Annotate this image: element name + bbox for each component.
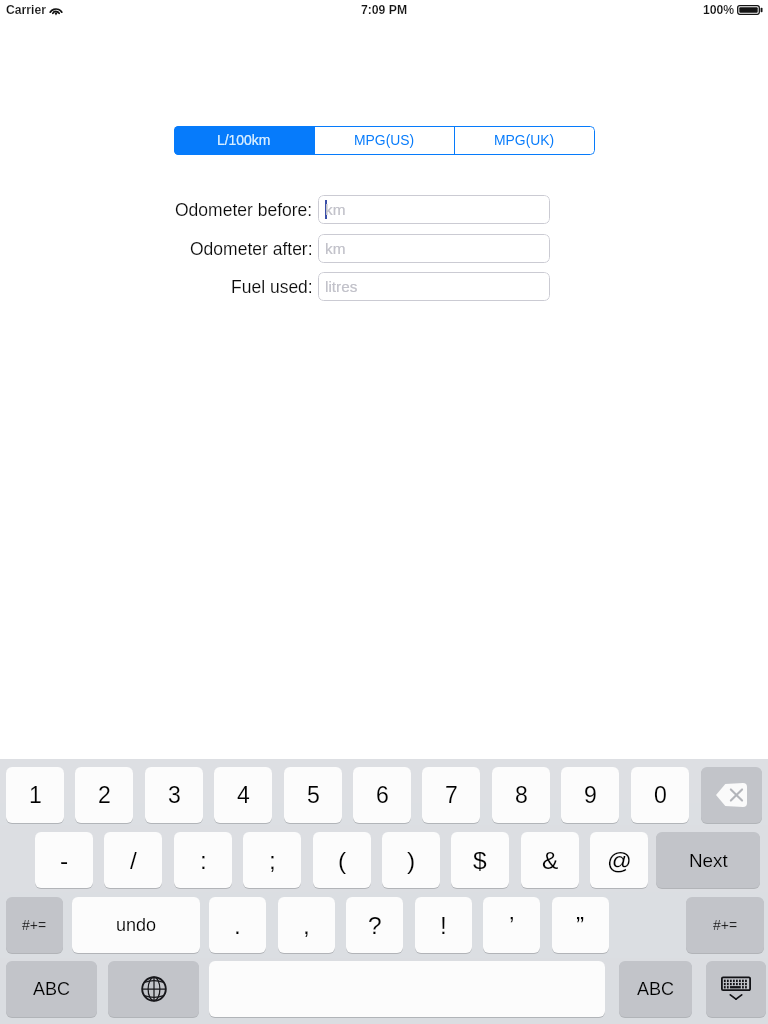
staticText: undo: [116, 915, 157, 935]
button[interactable]: $: [451, 832, 509, 888]
button[interactable]: #+=: [6, 897, 63, 953]
staticText: L/100km: [217, 132, 271, 148]
button[interactable]: !: [415, 897, 472, 953]
button[interactable]: ABC: [619, 961, 692, 1017]
staticText: 100%: [703, 3, 735, 17]
staticText: ’: [509, 912, 515, 939]
staticText: Next: [689, 850, 728, 871]
staticText: 3: [168, 782, 181, 808]
staticText: ?: [368, 912, 382, 939]
button[interactable]: 7: [422, 767, 480, 823]
button[interactable]: MPG(US): [315, 126, 454, 155]
button[interactable]: ’: [483, 897, 540, 953]
staticText: 6: [376, 782, 389, 808]
staticText: -: [60, 847, 69, 874]
button[interactable]: /: [104, 832, 162, 888]
staticText: 9: [584, 782, 597, 808]
staticText: ”: [576, 912, 585, 939]
staticText: Carrier: [6, 3, 46, 17]
staticText: 1: [29, 782, 42, 808]
staticText: Fuel used:: [231, 277, 313, 297]
staticText: MPG(UK): [494, 132, 555, 148]
button[interactable]: 1: [6, 767, 64, 823]
staticText: 0: [654, 782, 667, 808]
button[interactable]: Next keyboard: [108, 961, 199, 1017]
staticText: .: [234, 912, 241, 939]
staticText: 4: [237, 782, 250, 808]
staticText: #+=: [22, 917, 47, 933]
button[interactable]: :: [174, 832, 232, 888]
button[interactable]: ;: [243, 832, 301, 888]
staticText: @: [607, 847, 632, 874]
button[interactable]: MPG(UK): [455, 126, 594, 155]
staticText: 8: [515, 782, 528, 808]
staticText: ;: [269, 847, 276, 874]
button[interactable]: ,: [278, 897, 335, 953]
button[interactable]: L/100km: [174, 126, 314, 155]
button[interactable]: Next: [656, 832, 760, 888]
staticText: :: [200, 847, 207, 874]
button[interactable]: #+=: [686, 897, 764, 953]
button[interactable]: 6: [353, 767, 411, 823]
button[interactable]: @: [590, 832, 648, 888]
staticText: km: [325, 201, 346, 218]
button[interactable]: km: [318, 234, 550, 263]
staticText: !: [440, 912, 447, 939]
button[interactable]: Hide keyboard: [706, 961, 766, 1017]
button[interactable]: 5: [284, 767, 342, 823]
staticText: 5: [307, 782, 320, 808]
staticText: /: [130, 847, 137, 874]
staticText: 2: [98, 782, 111, 808]
staticText: $: [473, 847, 487, 874]
button[interactable]: 2: [75, 767, 133, 823]
button[interactable]: &: [521, 832, 579, 888]
button[interactable]: undo: [72, 897, 200, 953]
staticText: &: [542, 847, 559, 874]
staticText: 7: [445, 782, 458, 808]
button[interactable]: 8: [492, 767, 550, 823]
button[interactable]: litres: [318, 272, 550, 301]
staticText: Odometer after:: [190, 239, 313, 259]
button[interactable]: km: [318, 195, 550, 224]
button[interactable]: ): [382, 832, 440, 888]
staticText: 7:09 PM: [361, 3, 408, 17]
staticText: Odometer before:: [175, 200, 313, 220]
button[interactable]: 3: [145, 767, 203, 823]
button[interactable]: ?: [346, 897, 403, 953]
staticText: ABC: [637, 979, 675, 999]
staticText: (: [338, 847, 347, 874]
button[interactable]: 4: [214, 767, 272, 823]
staticText: ABC: [33, 979, 71, 999]
button[interactable]: 9: [561, 767, 619, 823]
staticText: ,: [303, 912, 310, 939]
staticText: MPG(US): [354, 132, 415, 148]
staticText: km: [325, 240, 346, 257]
button[interactable]: Backspace: [701, 767, 762, 823]
button[interactable]: -: [35, 832, 93, 888]
staticText: ): [407, 847, 416, 874]
button[interactable]: ”: [552, 897, 609, 953]
button[interactable]: ABC: [6, 961, 97, 1017]
staticText: litres: [325, 278, 358, 295]
staticText: #+=: [713, 917, 738, 933]
button[interactable]: 0: [631, 767, 689, 823]
button[interactable]: (: [313, 832, 371, 888]
button[interactable]: .: [209, 897, 266, 953]
